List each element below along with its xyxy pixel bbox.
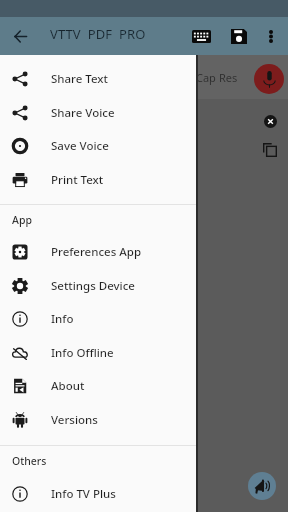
- staticText: Others: [12, 454, 47, 468]
- button[interactable]: Info TV Plus: [0, 477, 196, 511]
- staticText: Info TV Plus: [51, 486, 116, 502]
- button[interactable]: Share Text: [0, 62, 196, 96]
- staticText: About: [51, 378, 85, 394]
- staticText: Save Voice: [51, 138, 109, 154]
- button[interactable]: Save Voice: [0, 129, 196, 163]
- button[interactable]: Info: [0, 302, 196, 336]
- staticText: Info: [51, 311, 74, 327]
- button[interactable]: Clear text: [258, 109, 282, 133]
- button[interactable]: Share Voice: [0, 96, 196, 130]
- button[interactable]: Keyboard: [187, 22, 215, 50]
- staticText: Res: [219, 70, 238, 85]
- staticText: Cap: [196, 70, 216, 85]
- button[interactable]: Copy text: [258, 138, 282, 162]
- button[interactable]: About: [0, 369, 196, 403]
- button[interactable]: More options: [257, 22, 285, 50]
- button[interactable]: Preferences App: [0, 235, 196, 269]
- staticText: App: [12, 213, 32, 227]
- button[interactable]: Record voice: [254, 64, 284, 94]
- staticText: VTTV PDF PRO: [50, 25, 146, 43]
- staticText: Print Text: [51, 172, 104, 188]
- button[interactable]: Versions: [0, 403, 196, 437]
- button[interactable]: Speak text: [248, 472, 276, 500]
- staticText: Settings Device: [51, 278, 135, 294]
- staticText: Share Text: [51, 71, 109, 87]
- button[interactable]: Save: [225, 22, 253, 50]
- staticText: Preferences App: [51, 244, 142, 260]
- button[interactable]: Print Text: [0, 163, 196, 197]
- staticText: Share Voice: [51, 105, 115, 121]
- staticText: Info Offline: [51, 345, 114, 361]
- button[interactable]: Info Offline: [0, 336, 196, 370]
- button[interactable]: Settings Device: [0, 269, 196, 303]
- button[interactable]: Back: [6, 22, 34, 50]
- staticText: Versions: [51, 412, 98, 428]
